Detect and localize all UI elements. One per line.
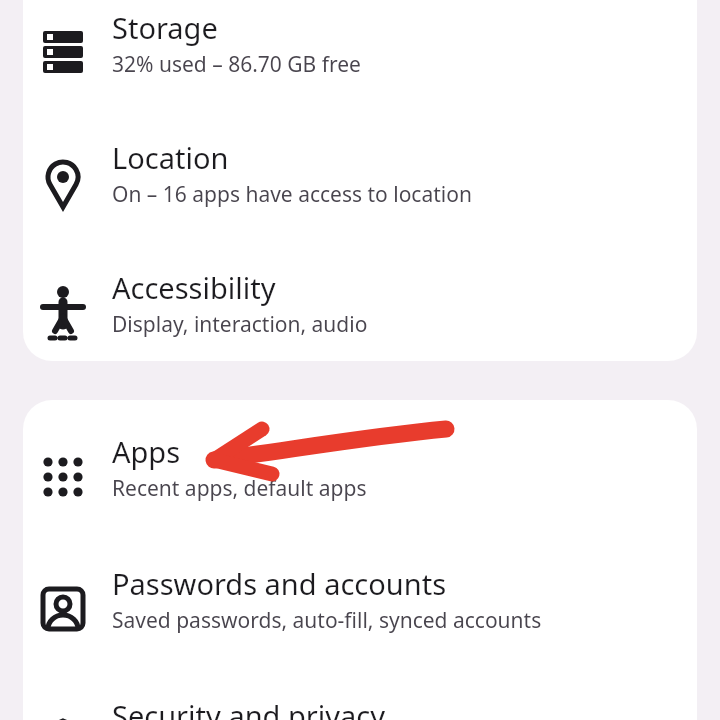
button[interactable]: Accessibility [23,256,697,386]
button[interactable]: Security and privacy [23,684,697,720]
staticText: Storage [112,8,218,47]
staticText: Security and privacy [112,696,385,720]
staticText: Location [112,138,229,177]
staticText: Saved passwords, auto-fill, synced accou… [112,606,542,635]
button[interactable]: Apps [23,420,697,550]
button[interactable]: Storage [23,0,697,126]
button[interactable]: Location [23,126,697,256]
staticText: Display, interaction, audio [112,310,368,339]
staticText: Apps [112,432,181,471]
staticText: On – 16 apps have access to location [112,180,472,209]
staticText: Recent apps, default apps [112,474,367,503]
staticText: Accessibility [112,268,276,307]
staticText: 32% used – 86.70 GB free [112,50,361,79]
button[interactable]: Passwords and accounts [23,552,697,682]
staticText: Passwords and accounts [112,564,447,603]
